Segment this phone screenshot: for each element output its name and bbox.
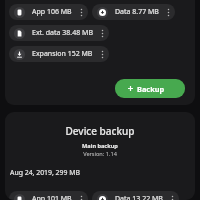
button[interactable]: Expansion 152 MB [9,46,109,62]
button[interactable]: Backup [115,79,185,98]
button[interactable]: Data 8.77 MB [92,4,175,20]
other: More options [80,195,83,200]
button[interactable]: Data 13.22 MB [92,191,179,200]
button[interactable]: App 101 MB [9,191,88,200]
other: More options [101,29,104,38]
staticText: Version: 1.14 [5,150,195,158]
other: More options [80,8,83,17]
staticText: App 101 MB [32,194,72,200]
staticText: Device backup [5,124,195,138]
button[interactable]: Ext. data 38.48 MB [9,25,109,41]
staticText: Main backup [5,142,195,150]
other: More options [167,8,170,17]
staticText: Aug 24, 2019, 299 MB [10,168,80,177]
staticText: Ext. data 38.48 MB [32,28,93,38]
staticText: App 106 MB [32,7,72,17]
staticText: Data 13.22 MB [115,194,163,200]
staticText: Expansion 152 MB [32,49,93,59]
staticText: Backup [137,84,165,94]
button[interactable]: App 106 MB [9,4,88,20]
staticText: Data 8.77 MB [115,7,159,17]
other: More options [171,195,174,200]
other: More options [101,50,104,59]
